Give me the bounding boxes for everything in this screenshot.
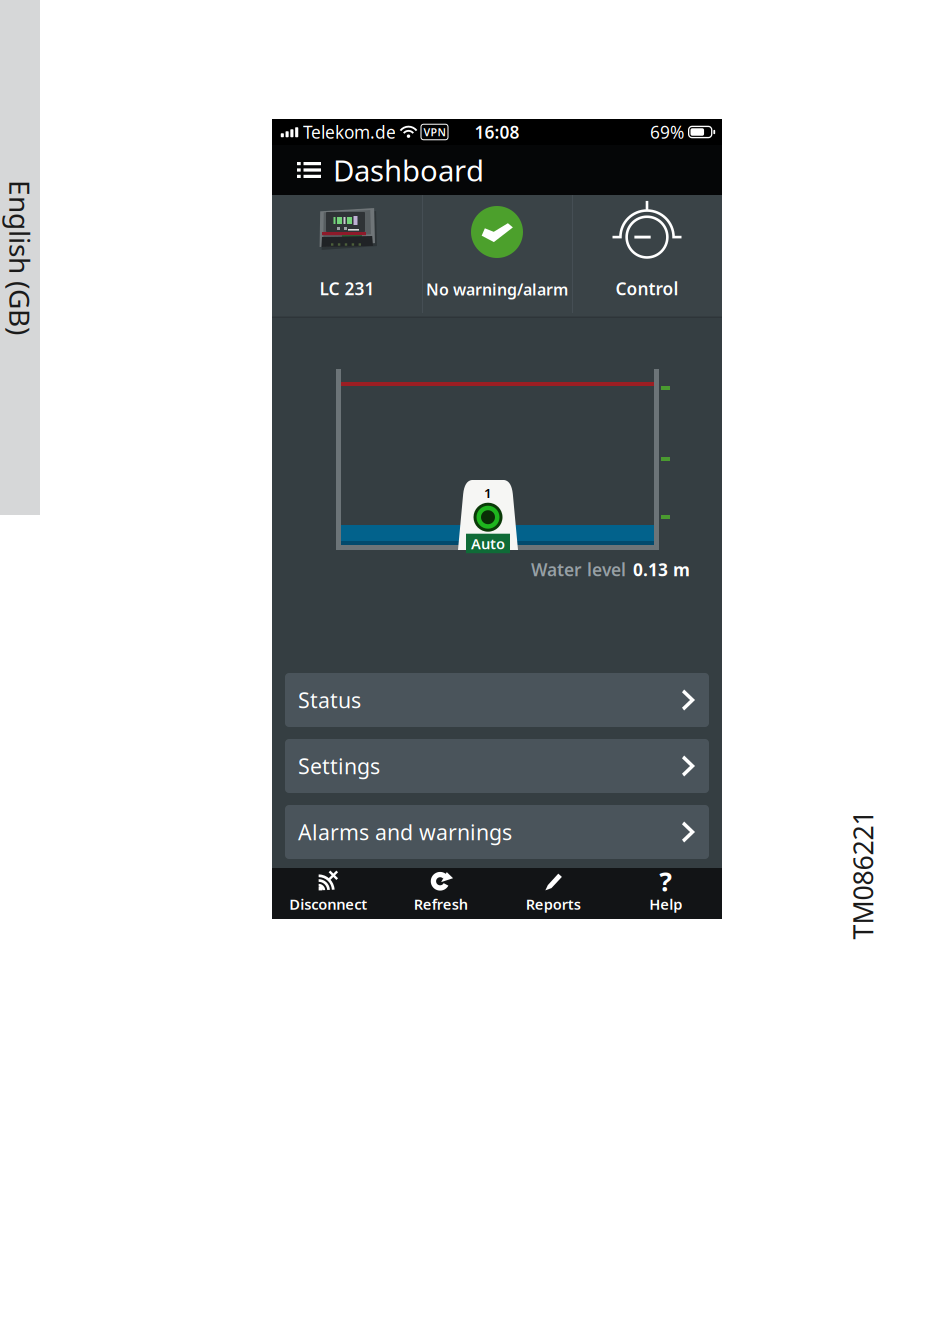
staticText: Auto <box>471 534 505 553</box>
staticText: Control <box>615 277 678 300</box>
staticText: VPN <box>423 125 445 139</box>
button[interactable]: Alarms and warnings <box>285 805 709 859</box>
button[interactable]: Control <box>572 195 722 318</box>
staticText: ? <box>659 864 672 899</box>
staticText: Water level <box>531 558 626 581</box>
staticText: Help <box>649 894 682 914</box>
button[interactable]: ? <box>609 868 722 919</box>
staticText: 1 <box>484 484 492 502</box>
staticText: Disconnect <box>289 894 367 914</box>
staticText: English (GB) <box>0 239 97 276</box>
staticText: LC 231 <box>319 277 374 300</box>
staticText: Settings <box>298 752 380 780</box>
button[interactable]: Refresh <box>384 868 497 919</box>
staticText: Alarms and warnings <box>298 818 512 846</box>
button[interactable]: Disconnect <box>272 868 384 919</box>
staticText: Status <box>298 686 361 714</box>
button[interactable]: Menu <box>272 145 333 195</box>
staticText: 0.13 m <box>633 558 690 581</box>
button[interactable]: No warning/alarm <box>422 195 572 318</box>
staticText: TM086221 <box>798 857 927 893</box>
button[interactable]: Settings <box>285 739 709 793</box>
staticText: 16:08 <box>474 120 519 143</box>
staticText: No warning/alarm <box>426 279 568 300</box>
button[interactable]: Reports <box>497 868 609 919</box>
staticText: Telekom.de <box>303 120 396 143</box>
button[interactable]: LC 231 <box>272 195 422 318</box>
button[interactable]: Status <box>285 673 709 727</box>
staticText: Refresh <box>414 894 468 914</box>
staticText: 69% <box>650 120 684 143</box>
staticText: Dashboard <box>333 150 484 189</box>
staticText: Reports <box>526 894 581 914</box>
